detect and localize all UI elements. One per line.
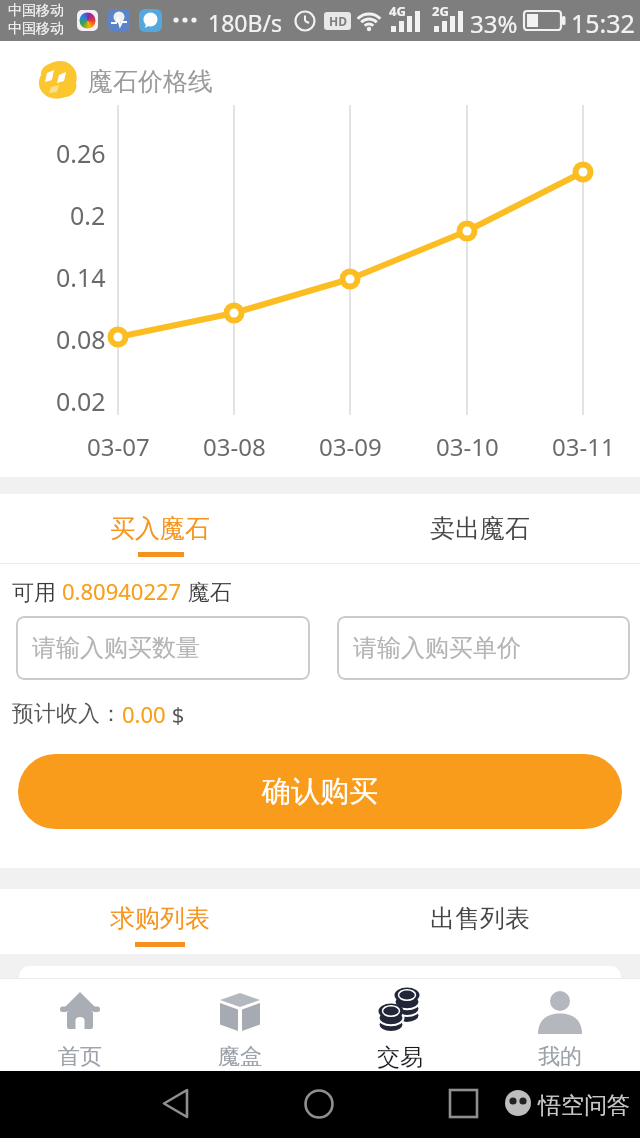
- staticText: 请输入购买单价: [353, 633, 521, 663]
- staticText: 悟空问答: [538, 1091, 630, 1120]
- staticText: 魔石: [182, 576, 232, 606]
- staticText: 中国移动: [8, 20, 64, 38]
- staticText: 出售列表: [430, 903, 530, 934]
- staticText: 0.14: [56, 260, 106, 292]
- staticText: 确认购买: [262, 773, 378, 810]
- staticText: 求购列表: [110, 903, 210, 934]
- staticText: 0.02: [56, 384, 106, 416]
- staticText: 我的: [538, 1043, 582, 1071]
- button[interactable]: 确认购买: [18, 754, 622, 829]
- button[interactable]: 请输入购买数量: [16, 616, 310, 680]
- staticText: 4G: [389, 2, 406, 20]
- staticText: 03-11: [552, 430, 615, 460]
- staticText: 15:32: [571, 6, 635, 40]
- staticText: 魔石价格线: [88, 66, 213, 97]
- staticText: 请输入购买数量: [32, 633, 200, 663]
- staticText: HD: [329, 13, 347, 29]
- button[interactable]: [0, 978, 160, 1071]
- staticText: 交易: [377, 1043, 423, 1071]
- staticText: 2G: [432, 2, 449, 20]
- staticText: 03-10: [436, 430, 499, 460]
- button[interactable]: 请输入购买单价: [337, 616, 630, 680]
- staticText: 买入魔石: [110, 513, 210, 544]
- staticText: 预计收入：: [12, 700, 122, 728]
- staticText: 0.80940227: [62, 576, 182, 606]
- button[interactable]: [320, 978, 480, 1071]
- button[interactable]: [320, 494, 640, 563]
- button[interactable]: [0, 494, 320, 563]
- staticText: 0.26: [56, 136, 106, 168]
- staticText: 03-08: [203, 430, 266, 460]
- button[interactable]: [0, 886, 320, 954]
- button[interactable]: [160, 978, 320, 1071]
- staticText: 卖出魔石: [430, 513, 530, 544]
- staticText: 0.08: [56, 322, 106, 354]
- staticText: 中国移动: [8, 2, 64, 20]
- staticText: 33%: [470, 7, 518, 40]
- button[interactable]: [480, 978, 640, 1071]
- staticText: 03-09: [319, 430, 382, 460]
- staticText: 180B/s: [208, 7, 282, 38]
- staticText: 0.2: [70, 198, 106, 230]
- staticText: 首页: [58, 1043, 102, 1071]
- staticText: 03-07: [87, 430, 150, 460]
- staticText: $: [166, 699, 185, 729]
- staticText: 魔盒: [218, 1043, 262, 1071]
- button[interactable]: [320, 886, 640, 954]
- staticText: 0.00: [122, 699, 166, 729]
- staticText: 可用: [12, 576, 62, 606]
